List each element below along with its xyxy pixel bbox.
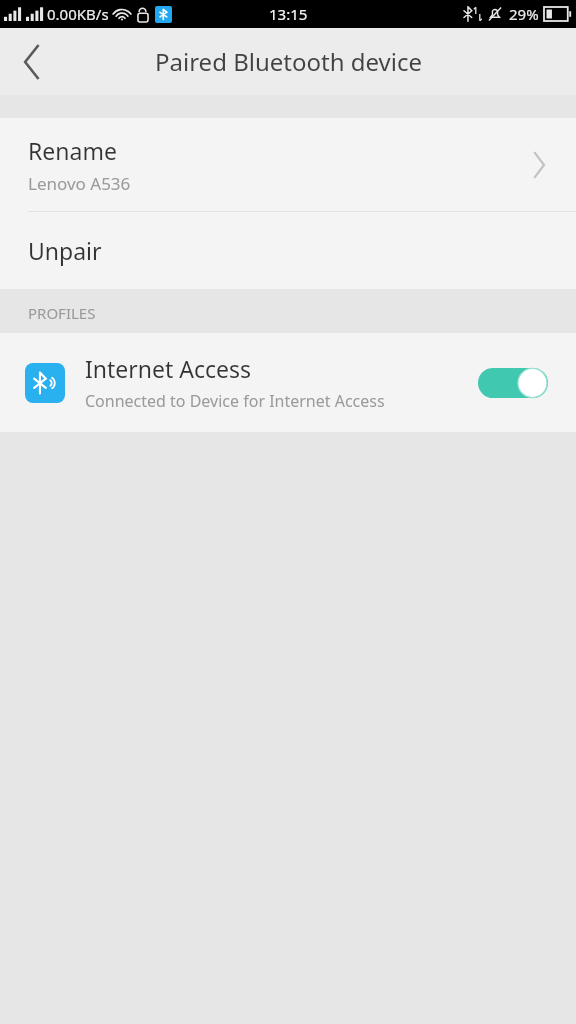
staticText: 13:15 — [269, 4, 308, 24]
staticText: Connected to Device for Internet Access — [85, 390, 385, 412]
staticText: Internet Access — [85, 353, 252, 384]
staticText: 0.00KB/s — [47, 4, 109, 24]
staticText: 29% — [509, 4, 539, 24]
staticText: Unpair — [28, 235, 102, 266]
button[interactable]: Rename — [0, 118, 576, 211]
staticText: PROFILES — [28, 303, 96, 323]
button[interactable]: Back — [0, 30, 64, 94]
staticText: Lenovo A536 — [28, 172, 131, 195]
staticText: Paired Bluetooth device — [155, 45, 422, 78]
staticText: Rename — [28, 135, 117, 166]
button[interactable]: Internet Access — [0, 333, 576, 432]
button[interactable]: Internet Access toggle — [478, 367, 548, 399]
button[interactable]: Unpair — [0, 212, 576, 289]
